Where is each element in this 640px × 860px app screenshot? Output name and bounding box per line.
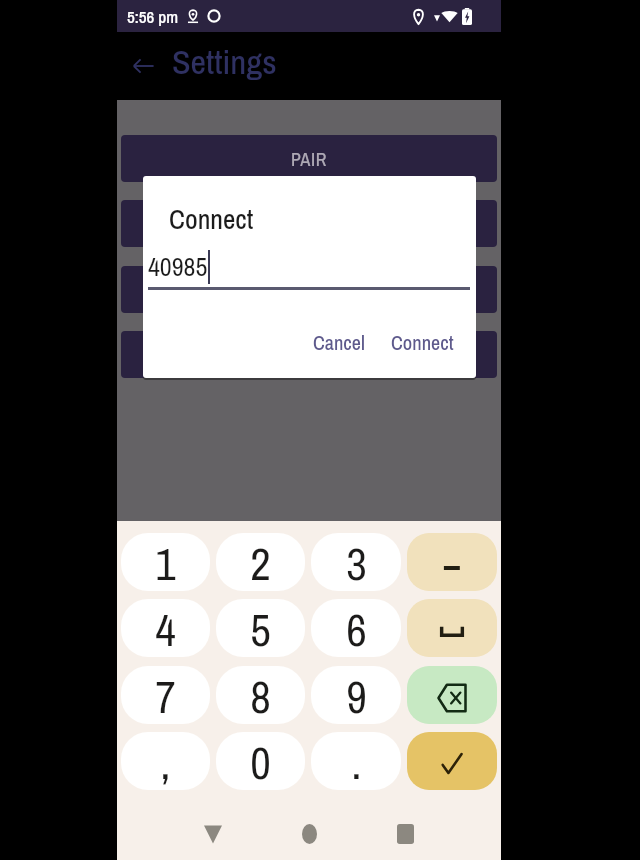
button[interactable]: 9 [311,666,401,724]
button[interactable]: 2 [216,533,305,591]
button[interactable] [121,200,497,247]
button[interactable]: PAIR [121,135,497,182]
staticText: 40985 [148,249,208,284]
staticText: 5 [250,599,271,657]
staticText: 6 [346,599,367,657]
button[interactable] [121,331,497,378]
button[interactable] [121,266,497,313]
button[interactable]: 8 [216,666,305,724]
button[interactable]: Connect [385,322,460,363]
button[interactable]: Back [123,46,163,86]
button[interactable]: Space [407,599,497,657]
staticText: Connect [169,201,254,237]
button[interactable]: Back [191,812,235,856]
button[interactable]: Minus [407,533,497,591]
button[interactable]: 1 [121,533,210,591]
staticText: 4 [155,599,176,657]
button[interactable]: Recents [383,812,427,856]
button[interactable]: 5 [216,599,305,657]
button[interactable]: 0 [216,732,305,790]
button[interactable]: , [121,732,210,790]
staticText: . [351,732,362,790]
staticText: 9 [346,666,367,724]
staticText: Cancel [313,329,365,356]
staticText: Connect [391,329,454,356]
staticText: 1 [155,533,176,591]
button[interactable]: Backspace [407,666,497,724]
button[interactable]: . [311,732,401,790]
staticText: 8 [250,666,271,724]
staticText: , [160,732,171,790]
staticText: 7 [155,666,176,724]
staticText: PAIR [291,147,328,171]
staticText: 0 [250,732,271,790]
staticText: 3 [346,533,367,591]
button[interactable]: 6 [311,599,401,657]
staticText: Settings [172,39,277,85]
button[interactable]: Cancel [307,322,371,363]
button[interactable]: 4 [121,599,210,657]
button[interactable]: 3 [311,533,401,591]
button[interactable]: 7 [121,666,210,724]
staticText: 2 [250,533,271,591]
button[interactable]: Home [287,812,331,856]
button[interactable]: Enter [407,732,497,790]
staticText: 5:56 pm [127,5,179,28]
